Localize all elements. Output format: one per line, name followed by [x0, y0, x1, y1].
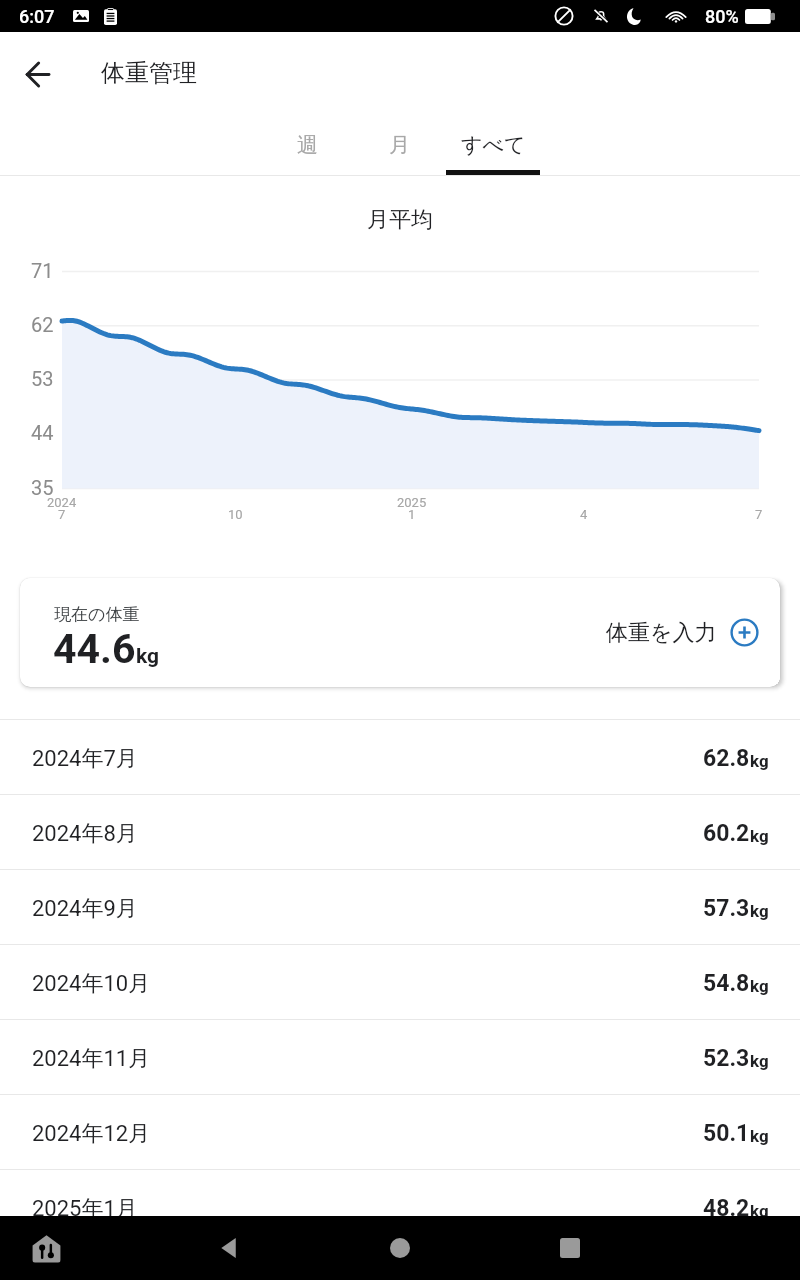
staticText: 2024年12月	[32, 1120, 151, 1148]
staticText: 週	[297, 132, 318, 158]
staticText: 53	[31, 367, 54, 390]
staticText: 2025	[397, 495, 427, 510]
staticText: 60.2	[703, 820, 750, 847]
button[interactable]: Back	[184, 1216, 274, 1280]
staticText: 2024年8月	[32, 820, 138, 848]
button[interactable]: 現在の体重	[20, 578, 780, 687]
staticText: kg	[750, 1051, 769, 1071]
staticText: 62.8	[703, 745, 750, 772]
staticText: kg	[136, 644, 160, 669]
staticText: 2024年11月	[32, 1045, 151, 1073]
staticText: kg	[750, 826, 769, 846]
staticText: 2024年9月	[32, 895, 138, 923]
staticText: 月	[389, 132, 410, 158]
staticText: 80%	[705, 6, 739, 27]
staticText: 71	[31, 259, 54, 282]
staticText: 2024	[47, 495, 77, 510]
staticText: 7	[58, 507, 66, 522]
staticText: 月平均	[367, 206, 433, 234]
button[interactable]: 2024年10月	[0, 944, 800, 1019]
button[interactable]: 2024年8月	[0, 794, 800, 869]
staticText: 54.8	[703, 970, 750, 997]
button[interactable]: Recent apps	[525, 1216, 615, 1280]
staticText: 48.2	[703, 1195, 750, 1222]
staticText: 現在の体重	[54, 604, 140, 625]
button[interactable]: 2024年9月	[0, 869, 800, 944]
button[interactable]: すべて	[446, 112, 540, 176]
button[interactable]: Assistant	[18, 1216, 130, 1280]
other: 体重を入力	[730, 618, 759, 647]
staticText: 7	[755, 507, 763, 522]
staticText: 52.3	[703, 1045, 750, 1072]
staticText: 50.1	[703, 1120, 750, 1147]
button[interactable]: 週	[260, 112, 354, 176]
staticText: 44.6	[53, 625, 136, 673]
button[interactable]: 2025年1月	[0, 1169, 800, 1244]
staticText: 2024年7月	[32, 745, 138, 773]
staticText: kg	[750, 751, 769, 771]
button[interactable]: 2024年7月	[0, 719, 800, 794]
staticText: kg	[750, 901, 769, 921]
staticText: kg	[750, 1126, 769, 1146]
staticText: 体重を入力	[606, 619, 717, 647]
staticText: 6:07	[19, 6, 55, 27]
staticText: 4	[580, 507, 588, 522]
staticText: 57.3	[703, 895, 750, 922]
staticText: 35	[31, 476, 54, 499]
staticText: 体重管理	[101, 58, 197, 88]
button[interactable]: 2024年11月	[0, 1019, 800, 1094]
staticText: kg	[750, 1201, 769, 1221]
button[interactable]: 2025年2月	[0, 1244, 800, 1280]
button[interactable]: 体重を入力	[606, 618, 759, 647]
button[interactable]: Back	[7, 44, 67, 104]
staticText: 2025年1月	[32, 1195, 138, 1223]
staticText: 44	[31, 421, 54, 444]
button[interactable]: Home	[355, 1216, 445, 1280]
staticText: 1	[408, 507, 416, 522]
button[interactable]: 月	[352, 112, 446, 176]
staticText: 2024年10月	[32, 970, 151, 998]
button[interactable]: 2024年12月	[0, 1094, 800, 1169]
staticText: 62	[31, 313, 54, 336]
staticText: kg	[750, 976, 769, 996]
staticText: すべて	[461, 132, 526, 158]
staticText: 10	[228, 507, 243, 522]
